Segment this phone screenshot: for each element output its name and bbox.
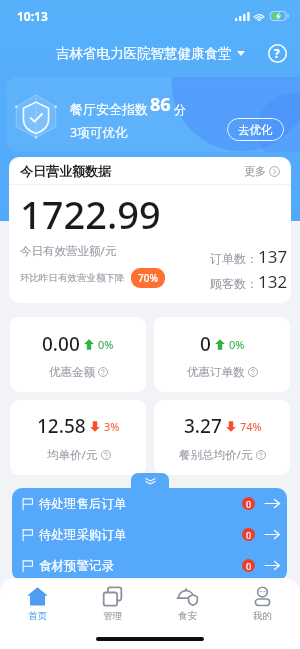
button[interactable]: 餐厅安全指数 [6, 77, 300, 152]
button[interactable]: Collapse panel [131, 473, 169, 488]
staticText: 餐厅安全指数 [70, 101, 148, 117]
staticText: 0% [229, 337, 245, 352]
staticText: 0 [246, 529, 252, 541]
button[interactable]: Help [265, 41, 289, 65]
staticText: 去优化 [238, 123, 273, 137]
staticText: 3项可优化 [70, 124, 128, 141]
staticText: 订单数： [210, 251, 258, 266]
staticText: 12.58 [37, 413, 86, 439]
staticText: 3.27 [184, 413, 222, 439]
staticText: 优惠金额 [49, 365, 95, 379]
button[interactable]: 0.00 [10, 317, 146, 392]
button[interactable]: 食材预警记录 [12, 550, 287, 581]
staticText: 0.00 [42, 331, 80, 357]
staticText: 10:13 [17, 8, 48, 24]
button[interactable]: 待处理采购订单 [12, 519, 287, 550]
button[interactable]: 待处理售后订单 [12, 488, 287, 519]
staticText: 优惠订单数 [187, 365, 245, 379]
staticText: 0 [246, 498, 252, 510]
staticText: 70% [138, 271, 158, 285]
staticText: 86 [150, 92, 171, 117]
staticText: 食材预警记录 [39, 558, 114, 574]
staticText: 更多 [244, 164, 266, 178]
staticText: 74% [240, 419, 262, 434]
staticText: 我的 [253, 610, 272, 622]
button[interactable]: 管理 [75, 578, 150, 630]
staticText: 3% [104, 419, 120, 434]
staticText: 今日营业额数据 [20, 163, 111, 179]
button[interactable]: 我的 [225, 578, 300, 630]
staticText: 1722.99 [20, 188, 161, 240]
staticText: 管理 [103, 610, 122, 622]
button[interactable]: 0 [154, 317, 290, 392]
staticText: 待处理售后订单 [39, 496, 127, 512]
staticText: 顾客数： [210, 276, 258, 291]
staticText: 环比昨日有效营业额下降 [20, 272, 125, 284]
staticText: ? [274, 45, 280, 61]
staticText: 吉林省电力医院智慧健康食堂 [56, 45, 232, 62]
button[interactable]: 12.58 [10, 400, 146, 475]
staticText: 均单价/元 [47, 447, 98, 463]
button[interactable]: 食安 [150, 578, 225, 630]
staticText: 今日有效营业额/元 [20, 243, 117, 259]
staticText: 待处理采购订单 [39, 527, 127, 543]
button[interactable]: 吉林省电力医院智慧健康食堂 [56, 45, 245, 62]
staticText: 132 [258, 270, 288, 293]
staticText: 分 [174, 102, 186, 117]
button[interactable]: 3.27 [154, 400, 290, 475]
staticText: 0 [246, 560, 252, 572]
staticText: 137 [258, 245, 288, 268]
staticText: 食安 [178, 610, 197, 622]
button[interactable]: 去优化 [227, 118, 284, 141]
staticText: 0% [98, 337, 114, 352]
button[interactable]: 更多 [244, 164, 280, 178]
staticText: 首页 [28, 610, 47, 622]
staticText: 0 [200, 331, 211, 357]
button[interactable]: 首页 [0, 578, 75, 630]
staticText: 餐别总均价/元 [179, 447, 253, 463]
